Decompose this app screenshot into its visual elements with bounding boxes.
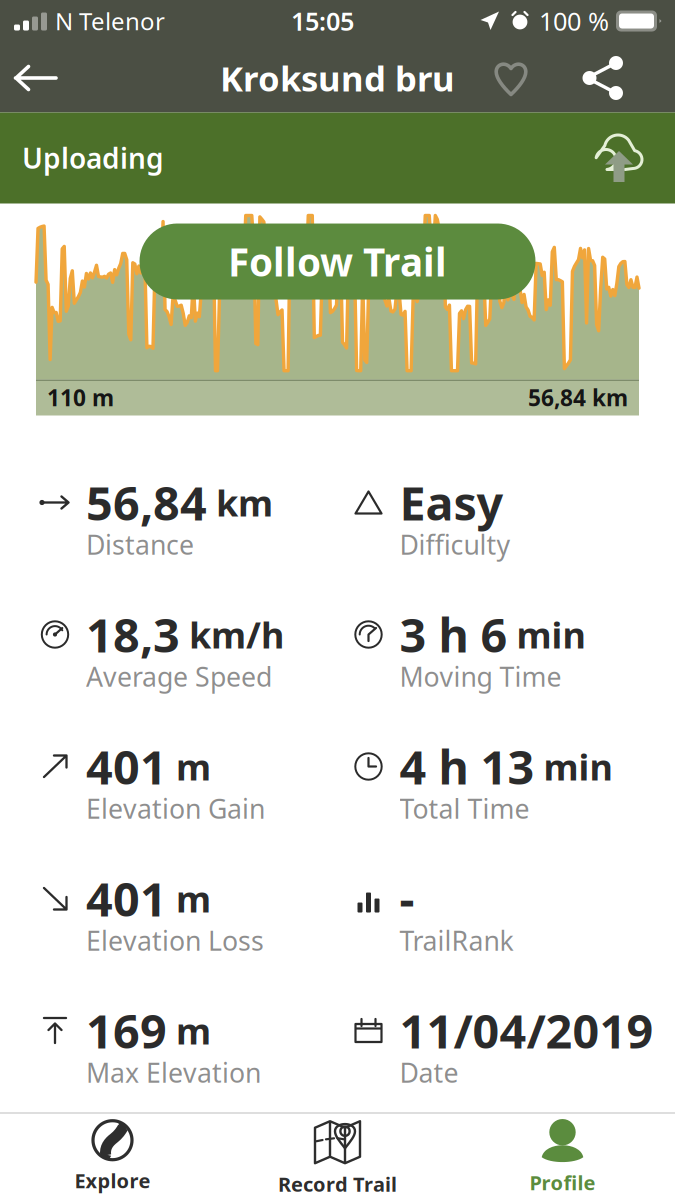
staticText: 4 h 13 (399, 735, 534, 797)
staticText: Average Speed (86, 659, 272, 694)
staticText: 3 h 6 (399, 603, 507, 665)
staticText: 110 m (47, 382, 114, 412)
button[interactable]: Profile (450, 1108, 675, 1200)
button[interactable]: Record Trail (225, 1107, 450, 1200)
staticText: 15:05 (291, 4, 354, 38)
staticText: 100 % (539, 4, 609, 38)
staticText: Difficulty (399, 527, 510, 562)
staticText: Record Trail (278, 1171, 397, 1197)
staticText: Profile (529, 1169, 595, 1196)
staticText: N Telenor (55, 5, 165, 37)
staticText: Date (399, 1055, 458, 1090)
staticText: 56,84 (86, 471, 207, 533)
staticText: m (176, 875, 211, 922)
staticText: 401 (86, 867, 167, 929)
staticText: Elevation Loss (86, 923, 264, 958)
button[interactable]: Explore (0, 1110, 225, 1200)
staticText: m (176, 743, 211, 790)
staticText: Easy (399, 471, 503, 533)
staticText: - (399, 867, 414, 929)
staticText: Follow Trail (228, 236, 447, 287)
staticText: km (216, 479, 273, 526)
staticText: Elevation Gain (86, 791, 265, 826)
staticText: m (176, 1007, 211, 1054)
button[interactable]: Follow Trail (139, 223, 535, 299)
staticText: TrailRank (399, 923, 513, 958)
staticText: Moving Time (399, 659, 561, 694)
staticText: Explore (74, 1167, 150, 1194)
button[interactable]: Share (555, 45, 675, 111)
staticText: Max Elevation (86, 1055, 261, 1090)
staticText: 401 (86, 735, 167, 797)
button[interactable]: Back (0, 47, 78, 109)
staticText: 56,84 km (528, 382, 628, 412)
staticText: 18,3 (86, 603, 180, 665)
staticText: Distance (86, 527, 194, 562)
staticText: Total Time (399, 791, 529, 826)
staticText: km/h (189, 611, 284, 658)
staticText: 11/04/2019 (399, 999, 653, 1061)
staticText: 169 (86, 999, 167, 1061)
staticText: Kroksund bru (220, 55, 455, 101)
button[interactable]: Favorite (474, 45, 555, 111)
staticText: min (543, 743, 612, 790)
staticText: Uploading (22, 139, 164, 177)
staticText: min (516, 611, 585, 658)
